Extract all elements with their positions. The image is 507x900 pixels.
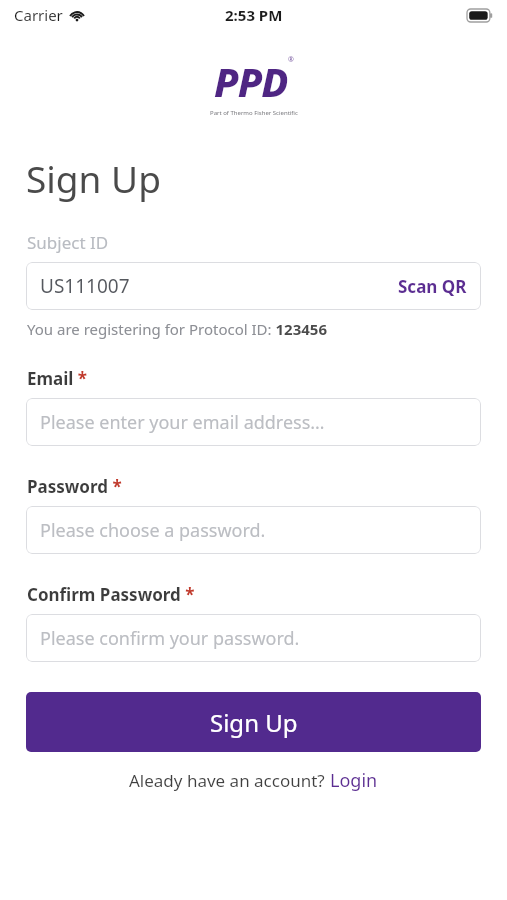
staticText: 2:53 PM: [225, 5, 283, 25]
staticText: Password *: [27, 475, 122, 498]
button[interactable]: Please choose a password.: [26, 506, 481, 554]
button[interactable]: Sign Up: [26, 692, 481, 752]
staticText: Scan QR: [398, 275, 467, 298]
staticText: Sign Up: [26, 153, 161, 203]
staticText: Please choose a password.: [40, 518, 266, 543]
button[interactable]: Please enter your email address…: [26, 398, 481, 446]
staticText: Email *: [27, 367, 88, 390]
staticText: Carrier: [14, 5, 63, 25]
button[interactable]: Please confirm your password.: [26, 614, 481, 662]
staticText: Aleady have an account?: [129, 769, 330, 792]
staticText: PPD: [214, 54, 288, 108]
button[interactable]: Scan QR: [398, 275, 467, 298]
staticText: Part of Thermo Fisher Scientific: [210, 109, 298, 117]
staticText: Subject ID: [27, 231, 109, 254]
staticText: Sign Up: [210, 706, 298, 739]
staticText: You are registering for Protocol ID: 123…: [27, 319, 327, 339]
staticText: Login: [330, 768, 378, 793]
staticText: US111007: [40, 273, 130, 299]
staticText: ®: [288, 55, 294, 65]
staticText: Confirm Password *: [27, 583, 195, 606]
button[interactable]: US111007: [26, 262, 481, 310]
button[interactable]: Login: [330, 768, 378, 793]
staticText: Please confirm your password.: [40, 626, 300, 651]
staticText: Please enter your email address…: [40, 410, 325, 435]
